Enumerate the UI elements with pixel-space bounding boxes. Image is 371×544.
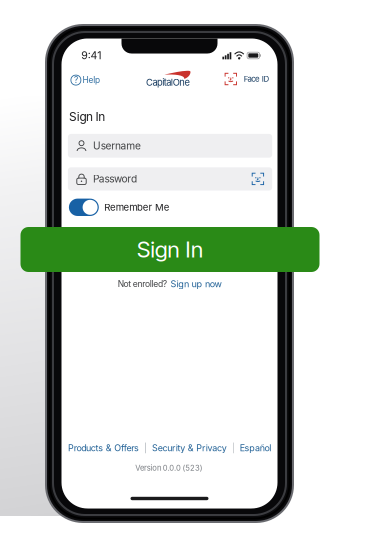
staticText: Face ID bbox=[244, 74, 269, 84]
staticText: Capital bbox=[146, 77, 173, 88]
button[interactable]: Use Face ID bbox=[252, 173, 264, 185]
button[interactable]: Sign In bbox=[20, 227, 319, 272]
staticText: Remember Me bbox=[104, 201, 170, 213]
staticText: Security & Privacy bbox=[152, 443, 227, 453]
staticText: Sign In bbox=[69, 110, 105, 124]
button[interactable]: Sign in with Face ID bbox=[223, 69, 271, 89]
button[interactable]: Sign up now bbox=[171, 278, 222, 289]
button[interactable]: Español bbox=[240, 443, 271, 453]
staticText: | bbox=[144, 443, 147, 453]
staticText: 9:41 bbox=[81, 49, 101, 62]
staticText: Username bbox=[93, 140, 141, 152]
staticText: | bbox=[232, 443, 235, 453]
button[interactable]: Security & Privacy bbox=[152, 443, 227, 453]
button[interactable]: Products & Offers bbox=[68, 443, 139, 453]
staticText: One bbox=[173, 77, 190, 88]
staticText: Products & Offers bbox=[68, 443, 139, 453]
staticText: Sign up now bbox=[171, 278, 222, 289]
staticText: Not enrolled? bbox=[118, 279, 167, 289]
staticText: Español bbox=[240, 443, 271, 453]
staticText: Password bbox=[93, 173, 137, 185]
button[interactable]: Remember Me bbox=[69, 199, 170, 216]
staticText: ? bbox=[74, 75, 78, 85]
staticText: Version 0.0.0 (523) bbox=[135, 463, 203, 473]
button[interactable]: ? bbox=[69, 71, 102, 89]
staticText: Help bbox=[83, 75, 100, 85]
staticText: Sign In bbox=[136, 236, 203, 263]
